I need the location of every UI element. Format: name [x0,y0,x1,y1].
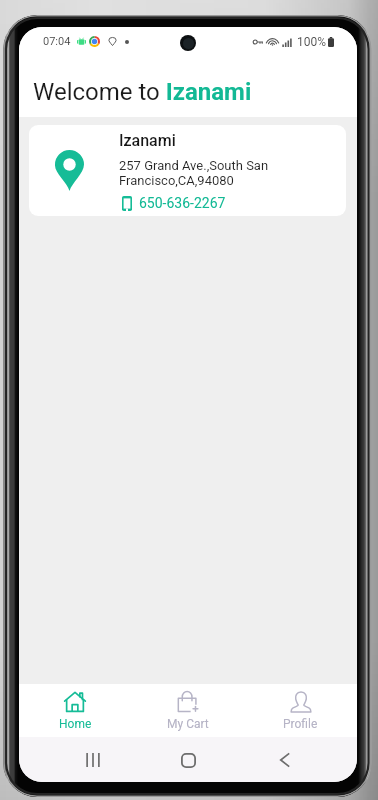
staticText: 650-636-2267 [139,195,226,211]
button[interactable]: Home [166,738,210,782]
button[interactable]: Recent apps [71,738,115,782]
button[interactable]: 650-636-2267 [122,195,226,211]
staticText: Welcome to Izanami [33,78,252,106]
staticText: Home [59,717,92,731]
staticText: 100% [297,35,327,49]
staticText: My Cart [167,717,209,731]
button[interactable]: Home [19,684,131,737]
button[interactable]: My Cart [131,684,244,737]
staticText: 07:04 [43,35,71,48]
button[interactable]: Profile [244,684,357,737]
staticText: 257 Grand Ave.,South San Francisco,CA,94… [119,158,269,188]
staticText: Izanami [119,131,176,150]
staticText: Profile [283,717,318,731]
button[interactable]: Back [262,738,306,782]
button[interactable]: Izanami [29,125,346,216]
